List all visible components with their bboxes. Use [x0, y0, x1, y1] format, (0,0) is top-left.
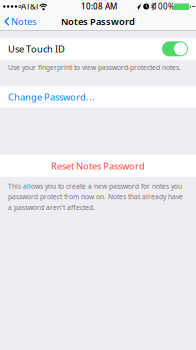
staticText: Use Touch ID [8, 43, 65, 55]
staticText: Reset Notes Password [51, 160, 145, 172]
button[interactable]: Change Password... [0, 86, 196, 108]
button[interactable]: Use Touch ID [162, 41, 188, 56]
staticText: Notes [11, 15, 36, 28]
staticText: Use your fingerprint to view password-pr… [8, 63, 181, 72]
staticText: 100% [153, 1, 175, 12]
button[interactable]: Back to Notes [0, 13, 36, 30]
staticText: This allows you to create a new password… [8, 182, 183, 212]
button[interactable]: Reset Notes Password [0, 155, 196, 177]
staticText: Notes Password [61, 15, 135, 28]
staticText: 10:08 AM [81, 1, 117, 12]
staticText: AT&T [21, 1, 39, 12]
staticText: Change Password... [8, 91, 95, 103]
